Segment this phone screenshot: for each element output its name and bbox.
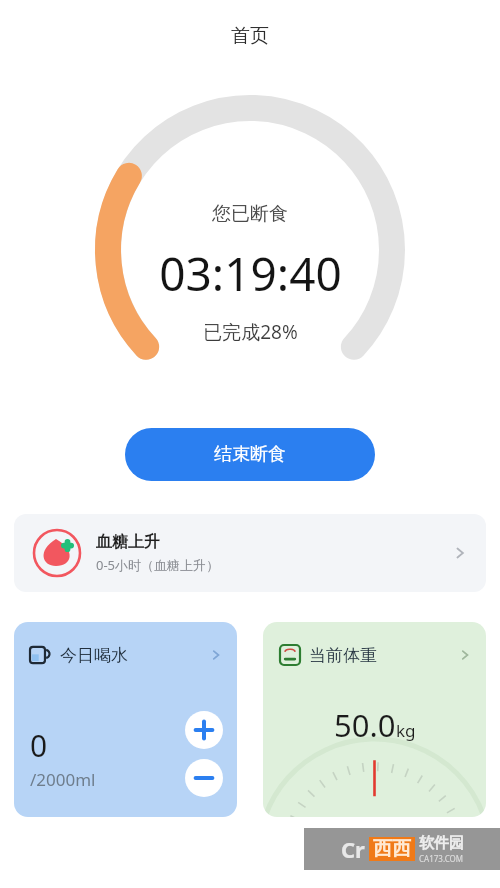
staticText: kg (396, 719, 416, 742)
button[interactable]: 今日喝水 (14, 622, 237, 817)
button[interactable]: Remove water (185, 759, 223, 797)
staticText: 首页 (231, 24, 269, 48)
staticText: 结束断食 (214, 443, 286, 466)
staticText: /2000ml (30, 768, 96, 791)
staticText: 软件园 (419, 834, 464, 853)
staticText: 03:19:40 (159, 242, 342, 305)
staticText: 0-5小时（血糖上升） (96, 556, 220, 574)
button[interactable]: 当前体重 (263, 622, 486, 817)
staticText: 当前体重 (309, 645, 458, 666)
staticText: CA173.COM (419, 853, 464, 864)
staticText: 血糖上升 (96, 532, 160, 552)
staticText: 0 (30, 725, 48, 766)
staticText: 50.0 (334, 704, 396, 746)
staticText: 您已断食 (212, 202, 288, 226)
staticText: 今日喝水 (60, 645, 209, 666)
staticText: 西西 (373, 837, 411, 861)
button[interactable]: 结束断食 (125, 428, 375, 481)
staticText: 已完成28% (203, 319, 298, 345)
button[interactable]: 血糖上升 (14, 514, 486, 592)
staticText: Cr (341, 834, 365, 864)
button[interactable]: Add water (185, 711, 223, 749)
